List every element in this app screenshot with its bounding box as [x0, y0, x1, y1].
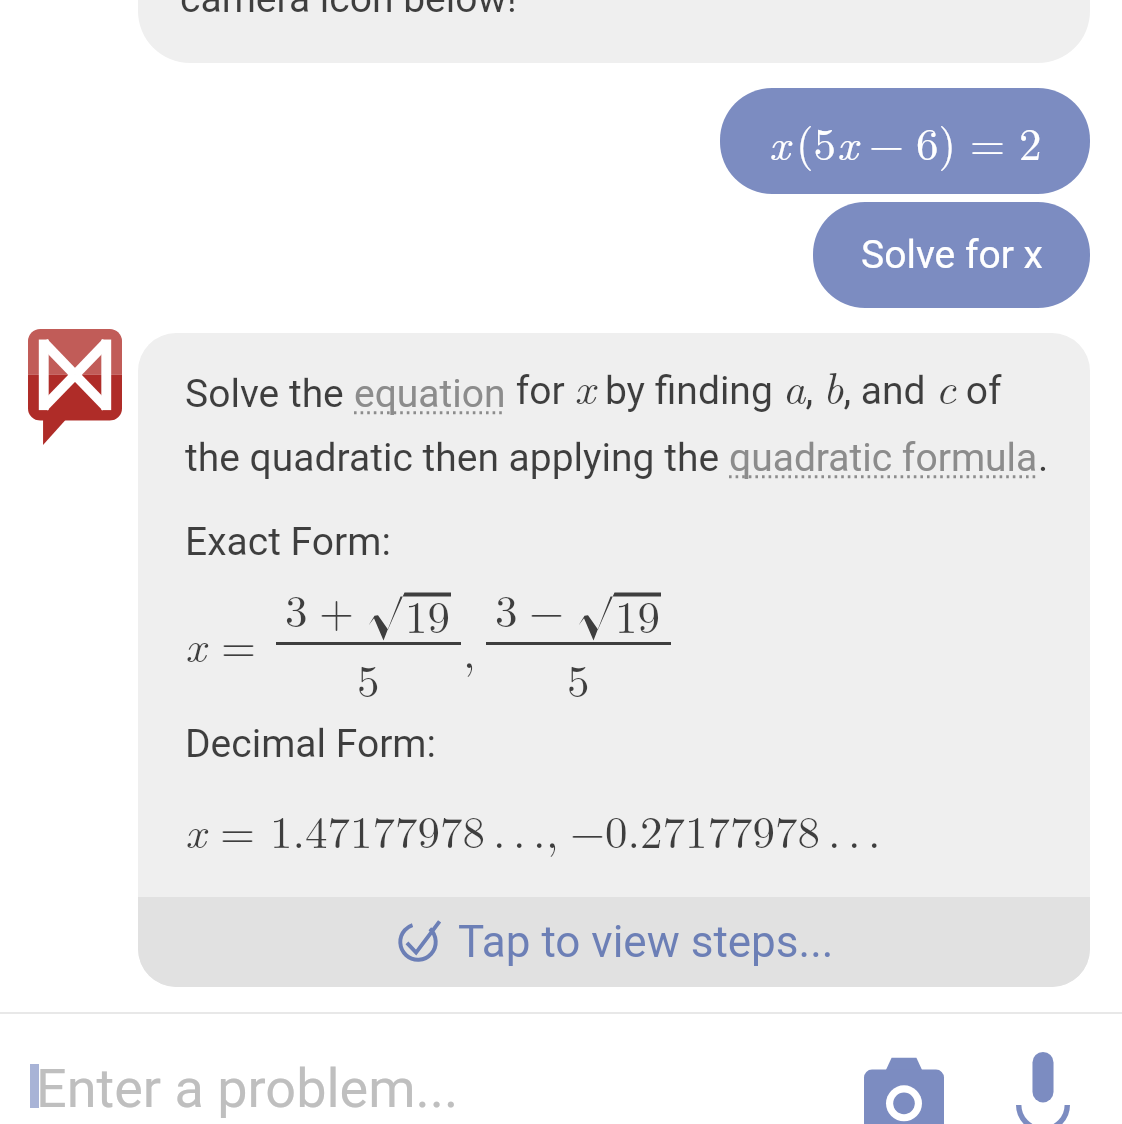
staticText: −	[529, 576, 565, 640]
staticText: x	[769, 109, 790, 173]
staticText: Solve the	[185, 371, 354, 417]
staticText: −0.27177978	[570, 797, 821, 861]
button[interactable]: Tap to view steps...	[138, 897, 1090, 987]
staticText: .	[1038, 435, 1049, 481]
button[interactable]: camera icon below!	[138, 0, 1090, 63]
staticText: 19	[405, 582, 451, 640]
staticText: 6)	[916, 109, 957, 173]
button[interactable]: Camera	[864, 1057, 944, 1124]
staticText: the quadratic then applying the	[185, 435, 729, 481]
staticText: Enter a problem...	[36, 1057, 459, 1120]
staticText: equation	[354, 371, 506, 417]
staticText: Decimal Form:	[185, 721, 437, 767]
staticText: quadratic formula	[729, 435, 1038, 481]
button[interactable]: Voice input	[1016, 1052, 1070, 1124]
button[interactable]: x	[720, 88, 1090, 194]
staticText: Solve for x	[861, 232, 1043, 278]
staticText: for x by finding a, b, and c of	[506, 353, 1002, 417]
staticText: . . .	[828, 797, 881, 861]
staticText: x	[185, 797, 206, 861]
staticText: 1.47177978	[270, 797, 486, 861]
staticText: =	[221, 611, 257, 675]
button[interactable]: Enter a problem...	[0, 1014, 1122, 1124]
staticText: ,	[463, 617, 476, 681]
staticText: x	[837, 109, 858, 173]
staticText: 2	[1019, 109, 1042, 173]
staticText: =	[220, 797, 256, 861]
staticText: 5	[567, 646, 590, 710]
staticText: −	[869, 109, 905, 173]
button[interactable]: Solve for x	[813, 202, 1090, 308]
staticText: (5	[796, 109, 837, 173]
staticText: 3	[285, 576, 308, 640]
staticText: ,	[546, 797, 559, 861]
staticText: 5	[357, 646, 380, 710]
staticText: +	[319, 576, 355, 640]
staticText: . . .	[493, 797, 546, 861]
staticText: x	[185, 611, 206, 675]
staticText: Exact Form:	[185, 519, 391, 565]
staticText: 3	[495, 576, 518, 640]
staticText: Tap to view steps...	[458, 916, 834, 968]
staticText: =	[970, 109, 1006, 173]
staticText: camera icon below!	[180, 0, 517, 22]
staticText: 19	[615, 582, 661, 640]
